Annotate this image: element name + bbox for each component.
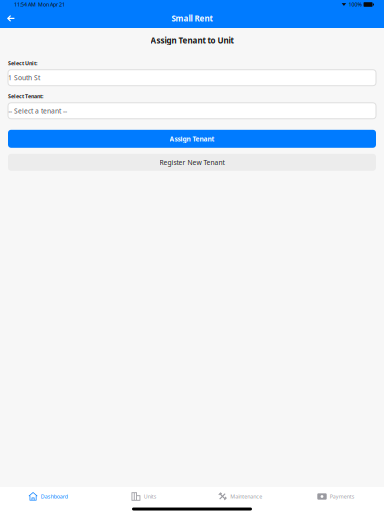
button[interactable]: Payments (288, 487, 384, 506)
staticText: Maintenance (230, 493, 262, 500)
staticText: Register New Tenant (159, 158, 224, 167)
staticText: Small Rent (171, 13, 212, 24)
staticText: Dashboard (41, 493, 68, 500)
staticText: 100% (348, 1, 361, 8)
staticText: 11:54 AM Mon Apr 21 (14, 1, 65, 8)
staticText: Payments (330, 493, 355, 500)
button[interactable]: Assign Tenant (8, 130, 376, 148)
staticText: 1 South St (8, 73, 40, 82)
staticText: -- Select a tenant -- (8, 106, 67, 115)
button[interactable]: Units (96, 487, 192, 506)
staticText: Select Unit: (8, 60, 37, 67)
button[interactable]: Back (0, 9, 24, 28)
staticText: Assign Tenant (169, 134, 214, 143)
button[interactable]: Dashboard (0, 487, 96, 506)
staticText: Units (144, 493, 157, 500)
button[interactable]: Maintenance (192, 487, 288, 506)
staticText: Select Tenant: (8, 93, 43, 100)
button[interactable]: Register New Tenant (8, 154, 376, 171)
staticText: Assign Tenant to Unit (150, 35, 233, 46)
